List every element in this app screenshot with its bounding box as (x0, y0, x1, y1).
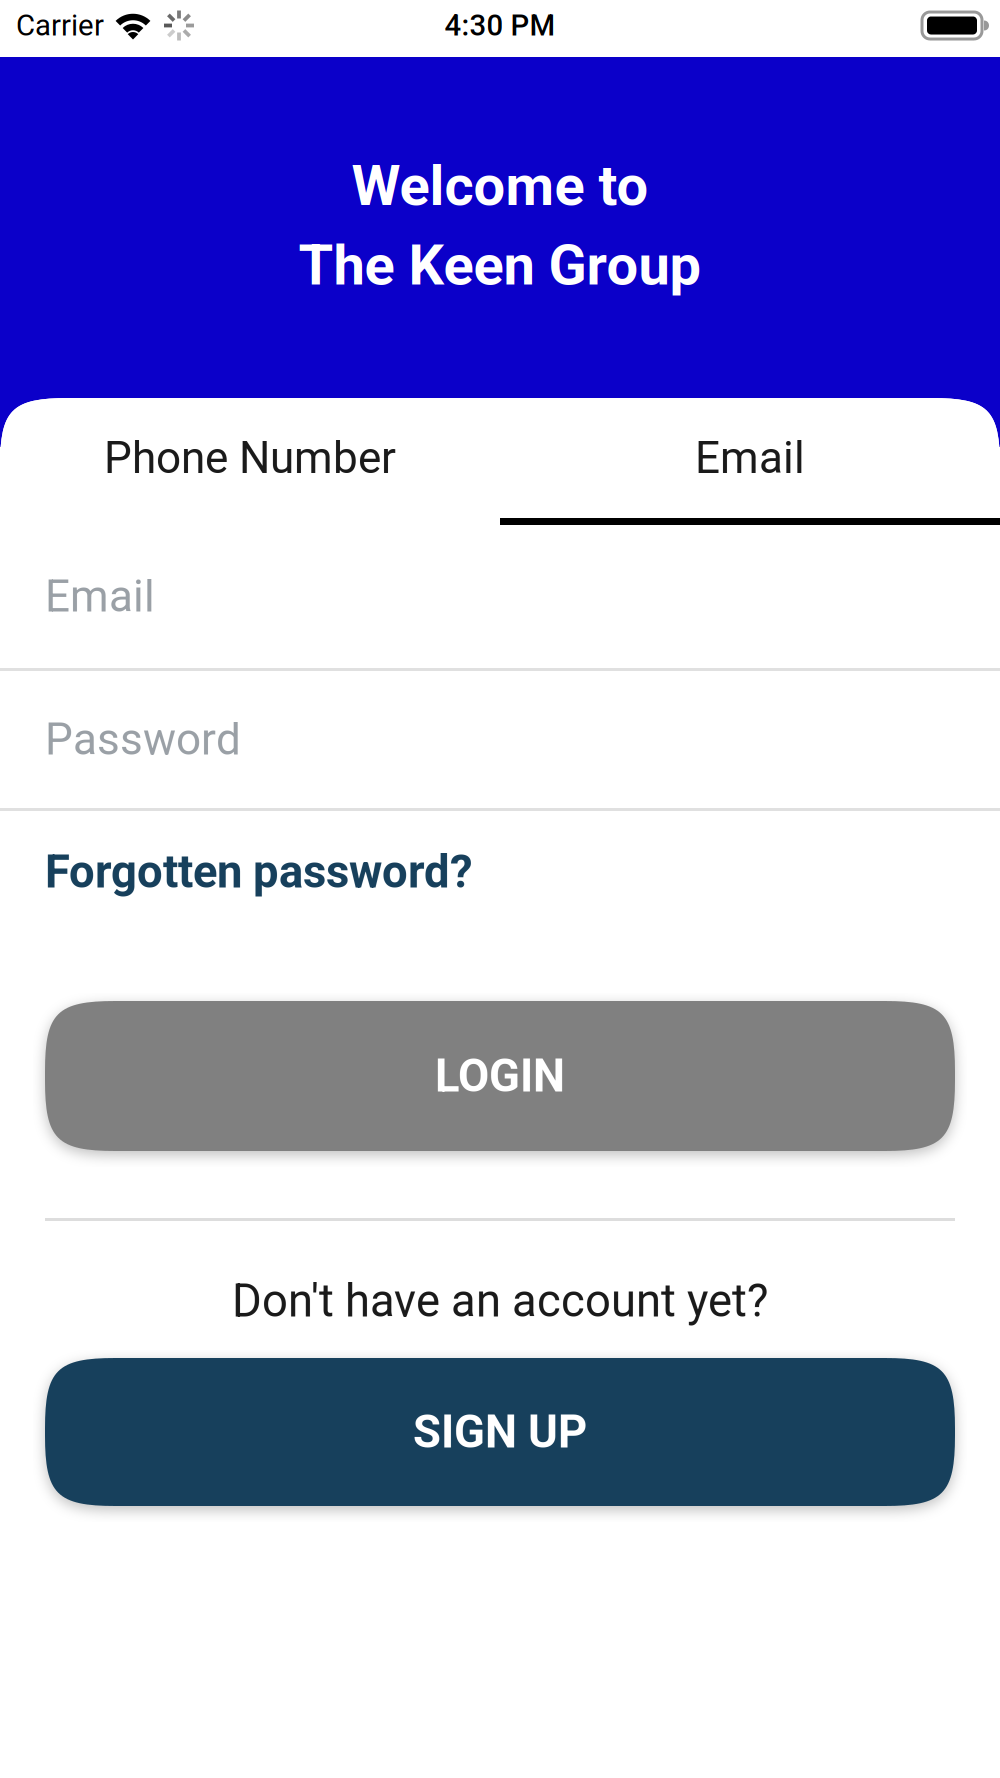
staticText: Email (45, 571, 155, 622)
staticText: Phone Number (104, 432, 396, 484)
staticText: Welcome to (351, 153, 648, 219)
button[interactable]: Email (0, 525, 1000, 668)
staticText: Carrier (16, 8, 104, 43)
staticText: LOGIN (435, 1049, 565, 1102)
button[interactable]: Forgotten password? (0, 811, 1000, 933)
staticText: Password (45, 714, 241, 765)
staticText: The Keen Group (298, 233, 701, 298)
staticText: Email (695, 432, 805, 484)
button[interactable]: Phone Number (0, 398, 500, 518)
button[interactable]: SIGN UP (45, 1358, 955, 1506)
staticText: Don't have an account yet? (232, 1274, 768, 1327)
button[interactable]: Password (0, 671, 1000, 808)
button[interactable]: Email (500, 398, 1000, 518)
button[interactable]: LOGIN (45, 1001, 955, 1151)
staticText: Forgotten password? (45, 845, 473, 898)
staticText: 4:30 PM (444, 8, 555, 43)
staticText: SIGN UP (413, 1405, 587, 1458)
